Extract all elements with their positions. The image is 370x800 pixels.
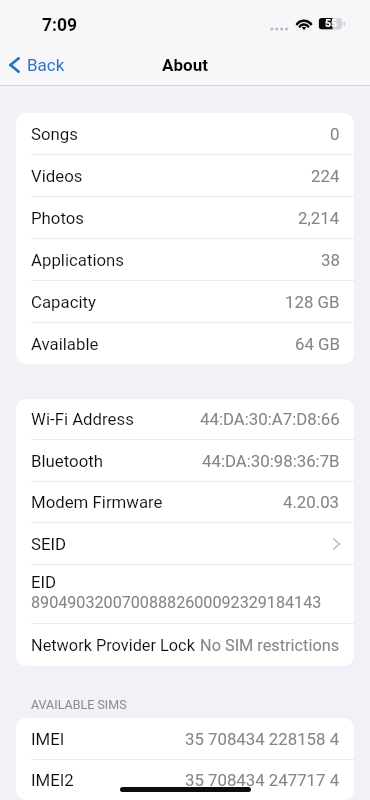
staticText: 44:DA:30:A7:D8:66 — [200, 409, 340, 429]
button[interactable]: Songs — [16, 113, 354, 155]
staticText: 64 GB — [295, 334, 340, 354]
staticText: Modem Firmware — [31, 492, 163, 512]
staticText: 7:09 — [42, 15, 78, 36]
button[interactable]: SEID — [16, 523, 354, 565]
button[interactable]: IMEI2 — [16, 760, 354, 800]
staticText: Network Provider Lock — [31, 636, 195, 655]
staticText: Capacity — [31, 292, 96, 312]
button[interactable]: Modem Firmware — [16, 482, 354, 523]
button[interactable]: Videos — [16, 155, 354, 197]
staticText: 224 — [311, 166, 340, 186]
staticText: 35 708434 247717 4 — [185, 770, 340, 790]
staticText: 2,214 — [298, 208, 340, 228]
staticText: No SIM restrictions — [200, 636, 340, 655]
button[interactable]: Photos — [16, 197, 354, 239]
button[interactable]: Network Provider Lock — [16, 624, 354, 666]
button[interactable]: Capacity — [16, 281, 354, 323]
button[interactable]: Bluetooth — [16, 440, 354, 482]
staticText: Videos — [31, 166, 83, 186]
button[interactable]: Available — [16, 323, 354, 364]
staticText: Songs — [31, 124, 78, 144]
staticText: 35 708434 228158 4 — [185, 729, 340, 749]
staticText: Photos — [31, 208, 85, 228]
staticText: 55 — [325, 17, 338, 29]
staticText: Applications — [31, 250, 125, 270]
staticText: About — [162, 55, 208, 75]
button[interactable]: Applications — [16, 239, 354, 281]
staticText: Back — [27, 55, 65, 75]
staticText: 89049032007008882600092329184143 — [31, 593, 322, 612]
staticText: 44:DA:30:98:36:7B — [202, 451, 340, 471]
staticText: SEID — [31, 534, 67, 554]
staticText: 38 — [321, 250, 340, 270]
staticText: Available — [31, 334, 99, 354]
staticText: AVAILABLE SIMS — [31, 697, 127, 712]
staticText: Bluetooth — [31, 451, 103, 471]
staticText: 128 GB — [285, 292, 340, 312]
staticText: EID — [31, 572, 57, 592]
staticText: IMEI2 — [31, 770, 74, 790]
staticText: IMEI — [31, 729, 65, 749]
button[interactable]: Back — [9, 55, 73, 75]
button[interactable]: Wi-Fi Address — [16, 399, 354, 440]
button[interactable]: IMEI — [16, 718, 354, 760]
button[interactable]: EID — [16, 565, 354, 624]
staticText: Wi-Fi Address — [31, 409, 134, 429]
other: Back — [9, 57, 20, 73]
staticText: 0 — [330, 124, 340, 144]
staticText: 4.20.03 — [283, 492, 340, 512]
